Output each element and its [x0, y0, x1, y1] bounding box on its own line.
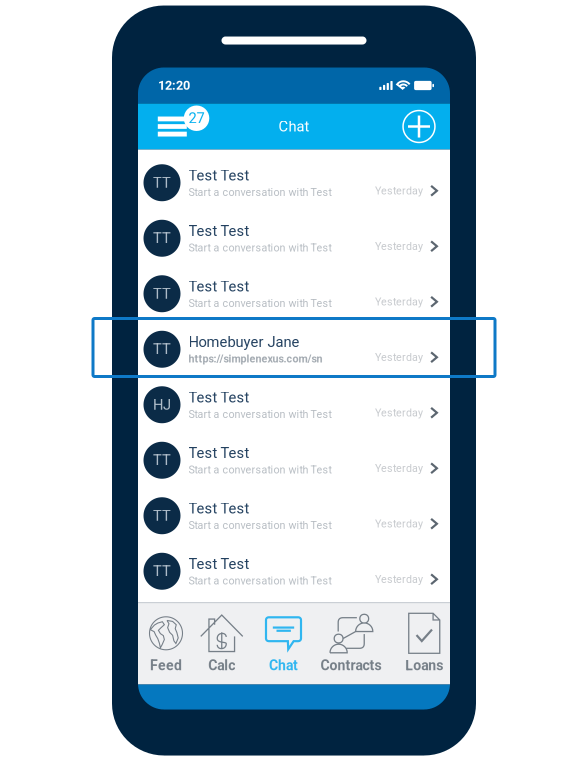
button[interactable]: Menu	[158, 111, 210, 141]
staticText: HJ	[153, 396, 171, 413]
staticText: Start a conversation with Test	[188, 575, 331, 587]
staticText: Test Test	[188, 389, 249, 406]
staticText: TT	[153, 285, 171, 302]
staticText: Start a conversation with Test	[188, 186, 331, 199]
staticText: Start a conversation with Test	[188, 408, 331, 421]
button[interactable]: TT	[138, 543, 450, 599]
staticText: TT	[153, 230, 171, 247]
staticText: Test Test	[188, 222, 249, 240]
staticText: Chat	[278, 118, 309, 135]
staticText: 12:20	[158, 78, 190, 93]
staticText: Test Test	[188, 167, 249, 184]
staticText: TT	[153, 174, 171, 191]
button[interactable]: New chat	[402, 109, 436, 143]
staticText: Chat	[269, 657, 298, 674]
button[interactable]: TT	[138, 155, 450, 210]
button[interactable]: TT	[138, 321, 450, 377]
button[interactable]: HJ	[138, 377, 450, 432]
staticText: Test Test	[188, 444, 249, 462]
staticText: Contracts	[320, 657, 381, 674]
button[interactable]: Loans	[384, 602, 450, 684]
staticText: Calc	[208, 657, 235, 674]
staticText: https://simplenexus.com/sn	[188, 353, 322, 365]
button[interactable]: TT	[138, 266, 450, 321]
button[interactable]: TT	[138, 488, 450, 543]
button[interactable]: Feed	[138, 602, 194, 684]
button[interactable]: TT	[138, 210, 450, 266]
staticText: Yesterday	[375, 573, 423, 585]
button[interactable]: Contracts	[317, 602, 384, 684]
staticText: Yesterday	[375, 351, 423, 363]
button[interactable]: Calc	[194, 602, 249, 684]
staticText: TT	[153, 563, 171, 580]
staticText: Start a conversation with Test	[188, 464, 331, 476]
staticText: Start a conversation with Test	[188, 519, 331, 532]
staticText: Start a conversation with Test	[188, 297, 331, 310]
button[interactable]: Chat	[249, 602, 317, 684]
staticText: Loans	[405, 657, 443, 674]
staticText: TT	[153, 507, 171, 524]
staticText: Yesterday	[375, 406, 423, 419]
staticText: 27	[189, 110, 205, 127]
staticText: Yesterday	[375, 517, 423, 530]
staticText: Test Test	[188, 500, 249, 517]
staticText: Yesterday	[375, 184, 423, 197]
staticText: TT	[153, 452, 171, 469]
staticText: Feed	[150, 657, 182, 674]
staticText: Test Test	[188, 278, 249, 295]
staticText: TT	[153, 341, 171, 358]
staticText: Yesterday	[375, 462, 423, 474]
staticText: Yesterday	[375, 295, 423, 308]
staticText: Start a conversation with Test	[188, 242, 331, 254]
button[interactable]: TT	[138, 432, 450, 488]
staticText: Yesterday	[375, 240, 423, 252]
staticText: Test Test	[188, 555, 249, 573]
staticText: Homebuyer Jane	[188, 333, 299, 351]
